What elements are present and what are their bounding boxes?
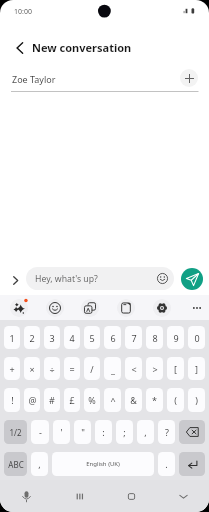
staticText: 3 bbox=[49, 332, 55, 344]
button[interactable]: 1 bbox=[4, 326, 20, 349]
staticText: % bbox=[88, 394, 96, 406]
staticText: English (UK) bbox=[86, 460, 120, 468]
button[interactable]: Voice input bbox=[0, 480, 53, 512]
staticText: = bbox=[69, 363, 75, 375]
staticText: * bbox=[152, 394, 157, 406]
button[interactable]: 3 bbox=[44, 326, 60, 349]
staticText: ) bbox=[195, 394, 198, 406]
button[interactable]: Recents bbox=[53, 480, 105, 512]
button[interactable]: 5 bbox=[84, 326, 100, 349]
button[interactable]: Back bbox=[6, 34, 33, 61]
button[interactable]: ! bbox=[4, 388, 20, 412]
staticText: 2 bbox=[29, 332, 35, 344]
staticText: # bbox=[49, 394, 55, 406]
staticText: . bbox=[165, 458, 168, 470]
button[interactable]: ( bbox=[167, 388, 184, 412]
button[interactable]: 6 bbox=[104, 326, 121, 349]
staticText: _ bbox=[111, 363, 115, 375]
staticText: [ bbox=[174, 363, 177, 375]
button[interactable]: 7 bbox=[125, 326, 142, 349]
button[interactable]: Expand toolbar bbox=[4, 267, 26, 295]
staticText: 5 bbox=[89, 332, 95, 344]
button[interactable]: Enter bbox=[179, 452, 205, 476]
button[interactable]: £ bbox=[64, 388, 80, 412]
button[interactable]: Clipboard bbox=[113, 295, 138, 320]
staticText: , bbox=[144, 426, 147, 438]
staticText: New conversation bbox=[32, 40, 132, 55]
staticText: ; bbox=[123, 426, 126, 438]
button[interactable]: [ bbox=[167, 357, 184, 380]
button[interactable]: ÷ bbox=[44, 357, 60, 380]
button[interactable]: : bbox=[95, 420, 112, 444]
staticText: < bbox=[131, 363, 137, 375]
button[interactable]: Home bbox=[105, 480, 157, 512]
staticText: ! bbox=[11, 394, 14, 406]
staticText: & bbox=[130, 394, 137, 406]
button[interactable]: ' bbox=[53, 420, 70, 444]
button[interactable]: × bbox=[24, 357, 40, 380]
staticText: / bbox=[90, 363, 94, 375]
staticText: £ bbox=[69, 394, 75, 406]
staticText: > bbox=[152, 363, 158, 375]
button[interactable]: Emoji bbox=[42, 295, 67, 320]
staticText: ] bbox=[195, 363, 198, 375]
button[interactable]: Send bbox=[181, 268, 203, 290]
button[interactable]: ) bbox=[188, 388, 205, 412]
button[interactable]: _ bbox=[104, 357, 121, 380]
button[interactable]: 0 bbox=[188, 326, 205, 349]
button[interactable]: / bbox=[84, 357, 100, 380]
staticText: ? bbox=[165, 426, 169, 438]
button[interactable]: Settings bbox=[149, 295, 174, 320]
button[interactable]: ] bbox=[188, 357, 205, 380]
button[interactable]: Hey, what's up? bbox=[26, 267, 174, 290]
button[interactable]: " bbox=[74, 420, 91, 444]
button[interactable]: Emoji bbox=[155, 271, 170, 286]
button[interactable]: - bbox=[31, 420, 49, 444]
button[interactable]: Translate bbox=[77, 295, 102, 320]
button[interactable]: ; bbox=[116, 420, 133, 444]
staticText: ( bbox=[174, 394, 177, 406]
button[interactable]: 1/2 bbox=[4, 420, 27, 444]
staticText: 1/2 bbox=[9, 427, 22, 438]
staticText: " bbox=[81, 426, 85, 438]
button[interactable]: , bbox=[137, 420, 154, 444]
button[interactable]: ^ bbox=[104, 388, 121, 412]
button[interactable]: * bbox=[146, 388, 163, 412]
button[interactable]: 4 bbox=[64, 326, 80, 349]
staticText: ' bbox=[60, 426, 63, 438]
staticText: 7 bbox=[131, 332, 137, 344]
staticText: 0 bbox=[194, 332, 200, 344]
button[interactable]: 2 bbox=[24, 326, 40, 349]
staticText: 4 bbox=[69, 332, 75, 344]
staticText: : bbox=[102, 426, 105, 438]
staticText: 1 bbox=[9, 332, 15, 344]
staticText: 8 bbox=[152, 332, 158, 344]
button[interactable]: ? bbox=[158, 420, 175, 444]
button[interactable]: # bbox=[44, 388, 60, 412]
button[interactable]: 8 bbox=[146, 326, 163, 349]
button[interactable]: < bbox=[125, 357, 142, 380]
button[interactable]: Add recipient bbox=[180, 69, 198, 87]
button[interactable]: @ bbox=[24, 388, 40, 412]
staticText: ^ bbox=[110, 394, 116, 406]
button[interactable]: , bbox=[31, 452, 48, 476]
button[interactable]: ABC bbox=[4, 452, 27, 476]
button[interactable]: = bbox=[64, 357, 80, 380]
staticText: - bbox=[39, 426, 42, 438]
staticText: Zoe Taylor bbox=[12, 73, 56, 85]
button[interactable]: . bbox=[158, 452, 175, 476]
button[interactable]: English (UK) bbox=[52, 452, 154, 476]
button[interactable]: 9 bbox=[167, 326, 184, 349]
button[interactable]: Hide keyboard bbox=[157, 480, 209, 512]
button[interactable]: > bbox=[146, 357, 163, 380]
button[interactable]: Zoe Taylor bbox=[0, 64, 209, 92]
staticText: Hey, what's up? bbox=[35, 273, 98, 285]
staticText: ABC bbox=[8, 459, 24, 470]
button[interactable]: + bbox=[4, 357, 20, 380]
button[interactable]: Assistant bbox=[6, 295, 31, 320]
button[interactable]: % bbox=[84, 388, 100, 412]
button[interactable]: & bbox=[125, 388, 142, 412]
button[interactable]: More options bbox=[184, 295, 209, 320]
button[interactable]: Delete bbox=[179, 420, 205, 444]
staticText: × bbox=[29, 363, 35, 375]
